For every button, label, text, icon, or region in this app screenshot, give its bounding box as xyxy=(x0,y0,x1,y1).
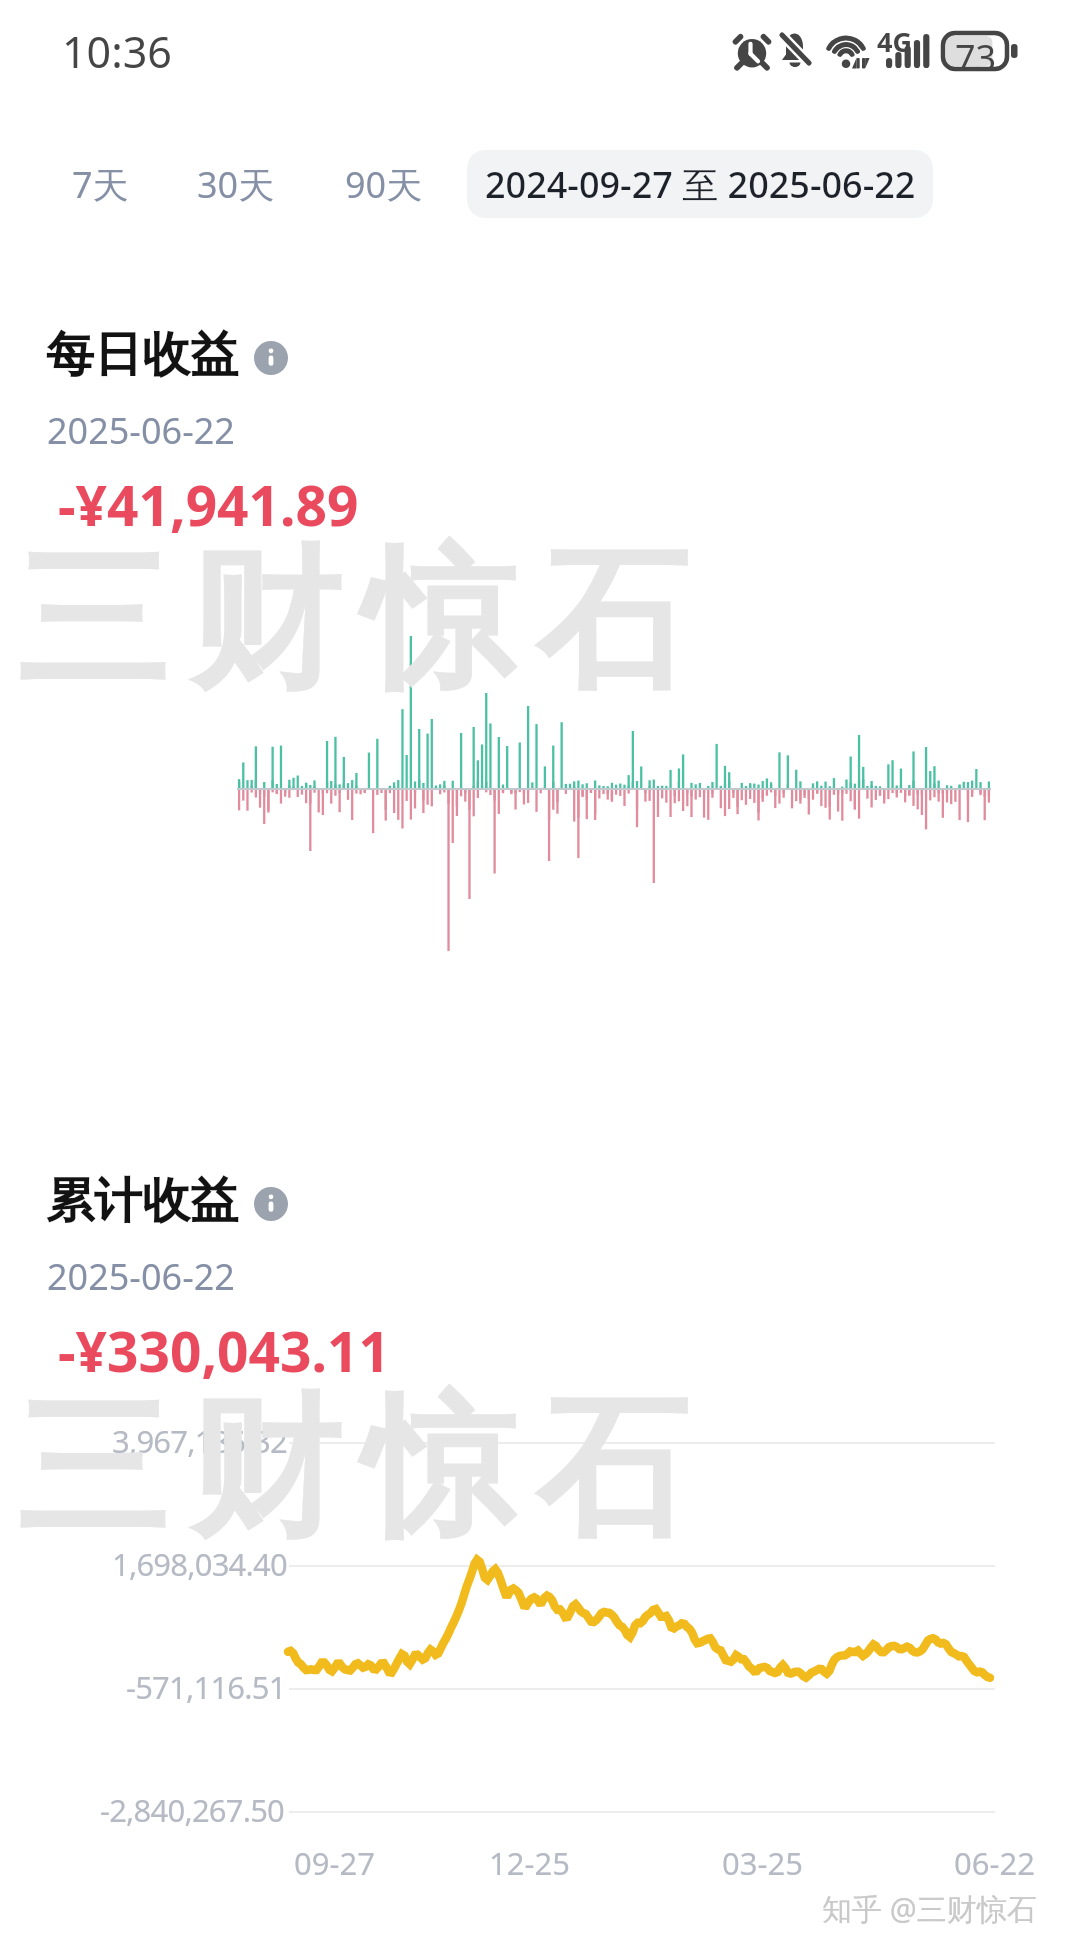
staticText: 4G xyxy=(877,23,912,60)
staticText: 30天 xyxy=(197,160,275,209)
staticText: 三财惊石 xyxy=(16,1374,710,1565)
button[interactable]: Info xyxy=(254,1187,288,1221)
staticText: 1,698,034.40 xyxy=(112,1543,287,1585)
other: Status icons xyxy=(720,0,1030,100)
button[interactable]: 2024-09-27 至 2025-06-22 xyxy=(467,150,933,218)
staticText: 2025-06-22 xyxy=(47,406,235,455)
button[interactable]: Info xyxy=(254,341,288,375)
button[interactable]: 30天 xyxy=(174,150,298,218)
staticText: 2025-06-22 xyxy=(47,1252,235,1301)
staticText: 06-22 xyxy=(954,1842,1035,1884)
staticText: 12-25 xyxy=(489,1842,570,1884)
button[interactable]: 累计收益 xyxy=(46,1171,238,1231)
staticText: 09-27 xyxy=(294,1842,375,1884)
button[interactable]: 每日收益 xyxy=(46,325,238,385)
button[interactable]: 7天 xyxy=(50,150,150,218)
staticText: 2024-09-27 至 2025-06-22 xyxy=(485,160,916,209)
staticText: 10:36 xyxy=(62,22,172,81)
staticText: 03-25 xyxy=(722,1842,803,1884)
staticText: -¥41,941.89 xyxy=(58,467,359,542)
button[interactable]: 90天 xyxy=(322,150,446,218)
staticText: 三财惊石 xyxy=(16,526,710,717)
staticText: -¥330,043.11 xyxy=(58,1313,390,1388)
staticText: 知乎 @三财惊石 xyxy=(822,1888,1037,1929)
staticText: -571,116.51 xyxy=(126,1666,286,1708)
staticText: 90天 xyxy=(345,160,423,209)
staticText: 7天 xyxy=(72,160,129,209)
staticText: 73 xyxy=(955,33,997,82)
staticText: 3,967,185.32 xyxy=(112,1420,287,1462)
staticText: -2,840,267.50 xyxy=(100,1789,285,1831)
